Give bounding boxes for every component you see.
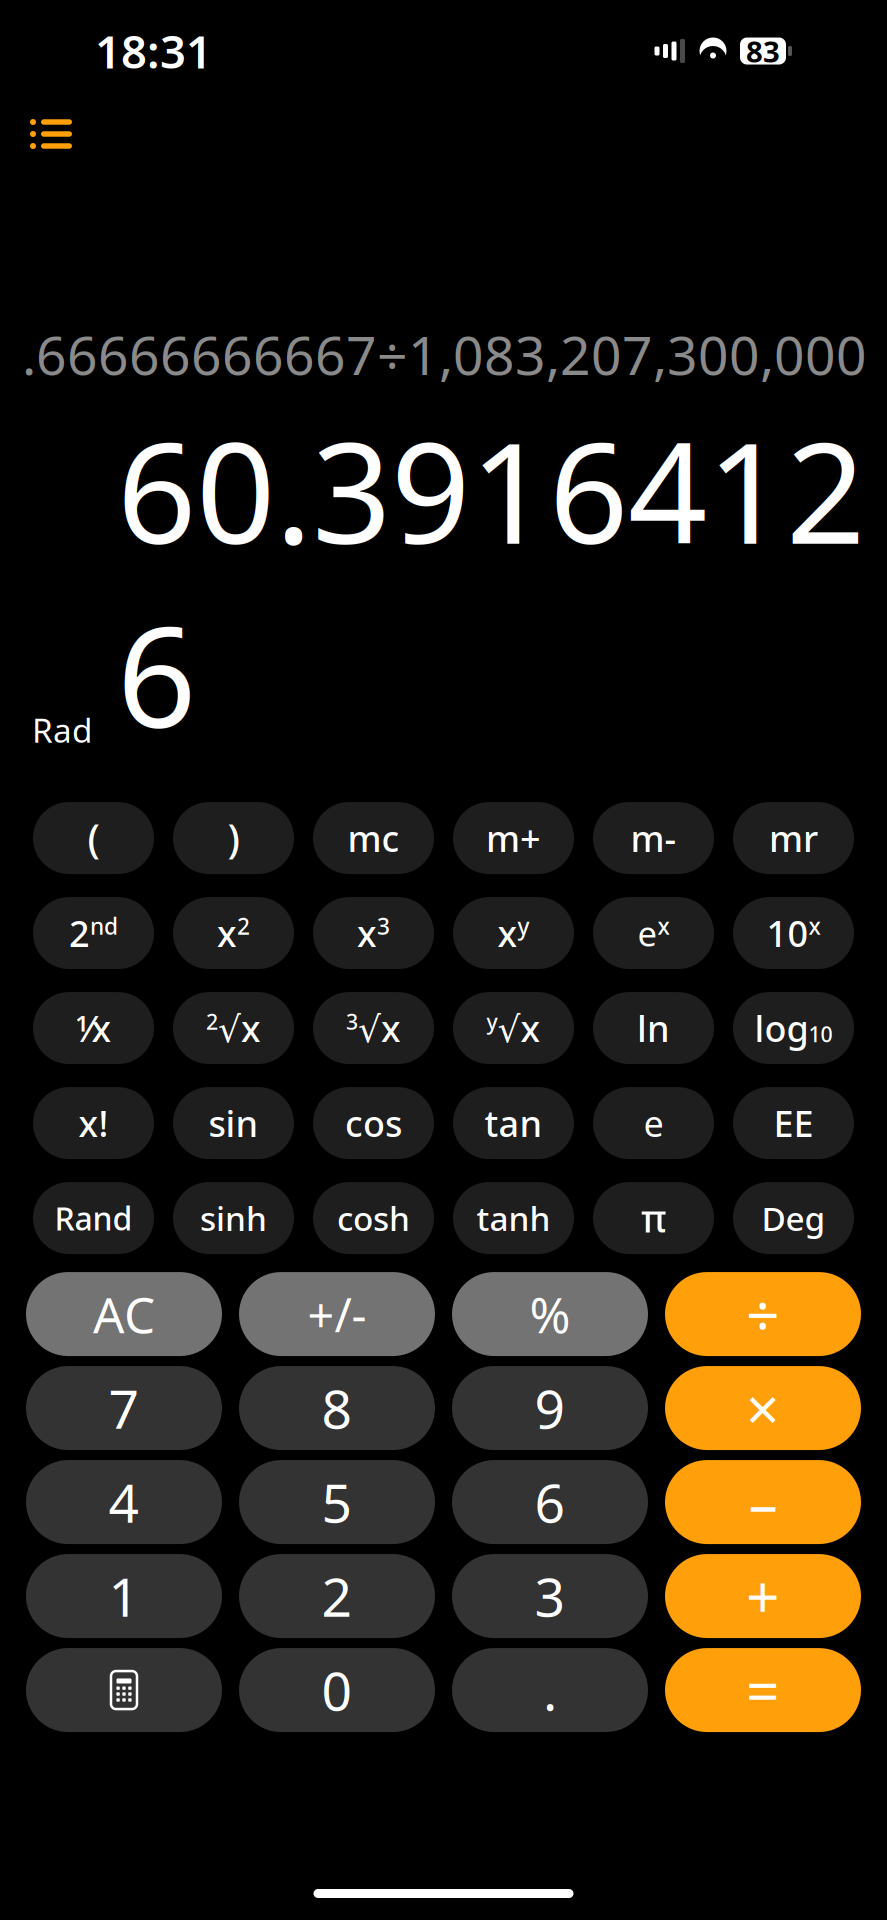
staticText: ⅟x — [75, 1004, 111, 1052]
button[interactable]: tan — [453, 1087, 574, 1159]
button[interactable]: 3 — [313, 992, 434, 1064]
staticText: 83 — [746, 31, 780, 70]
staticText: sinh — [200, 1196, 267, 1240]
button[interactable]: mc — [313, 802, 434, 874]
staticText: cos — [345, 1099, 402, 1147]
staticText: tan — [484, 1099, 542, 1147]
staticText: 5 — [321, 1467, 352, 1537]
staticText: 60.39164126 — [117, 398, 865, 766]
button[interactable]: ) — [173, 802, 294, 874]
button[interactable]: 2 — [33, 897, 154, 969]
button[interactable]: 4 — [26, 1460, 222, 1544]
button[interactable]: mr — [733, 802, 854, 874]
button[interactable]: AC — [26, 1272, 222, 1356]
staticText: x — [217, 909, 237, 957]
button[interactable]: 3 — [452, 1554, 648, 1638]
staticText: EE — [773, 1099, 813, 1147]
staticText: ( — [87, 811, 99, 865]
staticText: 4 — [108, 1467, 139, 1537]
staticText: . — [543, 1655, 557, 1725]
button[interactable]: Basic calculator — [26, 1648, 222, 1732]
staticText: e — [637, 910, 657, 956]
staticText: 8 — [321, 1373, 352, 1443]
staticText: 0 — [321, 1655, 352, 1725]
button[interactable]: Calculation history — [22, 106, 80, 162]
button[interactable]: 6 — [452, 1460, 648, 1544]
button[interactable]: e — [593, 897, 714, 969]
button[interactable]: e — [593, 1087, 714, 1159]
button[interactable]: +/- — [239, 1272, 435, 1356]
staticText: + — [746, 1557, 780, 1635]
button[interactable]: cosh — [313, 1182, 434, 1254]
staticText: Deg — [761, 1196, 825, 1240]
button[interactable]: y — [453, 992, 574, 1064]
staticText: ) — [227, 811, 239, 865]
button[interactable]: tanh — [453, 1182, 574, 1254]
staticText: 18:31 — [95, 21, 212, 81]
button[interactable]: x — [453, 897, 574, 969]
staticText: x! — [78, 1099, 108, 1147]
button[interactable]: Deg — [733, 1182, 854, 1254]
staticText: 2 — [69, 909, 90, 957]
button[interactable]: cos — [313, 1087, 434, 1159]
staticText: 10 — [808, 1020, 832, 1048]
button[interactable]: sin — [173, 1087, 294, 1159]
button[interactable]: – — [665, 1460, 861, 1544]
staticText: – — [748, 1463, 777, 1541]
staticText: x — [497, 909, 517, 957]
button[interactable]: ( — [33, 802, 154, 874]
button[interactable]: x — [173, 897, 294, 969]
button[interactable]: 9 — [452, 1366, 648, 1450]
button[interactable]: 1 — [26, 1554, 222, 1638]
staticText: y — [486, 1007, 497, 1036]
staticText: log — [754, 1004, 808, 1052]
staticText: √x — [218, 1004, 261, 1052]
button[interactable]: x — [313, 897, 434, 969]
staticText: x — [808, 911, 820, 941]
button[interactable]: ÷ — [665, 1272, 861, 1356]
button[interactable]: = — [665, 1648, 861, 1732]
staticText: e — [643, 1099, 663, 1147]
button[interactable]: 0 — [239, 1648, 435, 1732]
staticText: cosh — [337, 1196, 410, 1240]
staticText: √x — [358, 1004, 401, 1052]
staticText: 3 — [377, 911, 390, 941]
button[interactable]: 7 — [26, 1366, 222, 1450]
button[interactable]: % — [452, 1272, 648, 1356]
button[interactable]: . — [452, 1648, 648, 1732]
staticText: 9 — [534, 1373, 565, 1443]
staticText: 3 — [346, 1007, 358, 1036]
button[interactable]: 10 — [733, 897, 854, 969]
button[interactable]: m- — [593, 802, 714, 874]
button[interactable]: log — [733, 992, 854, 1064]
staticText: 10 — [766, 909, 808, 957]
staticText: π — [641, 1193, 666, 1243]
staticText: √x — [497, 1004, 540, 1052]
button[interactable]: ln — [593, 992, 714, 1064]
button[interactable]: EE — [733, 1087, 854, 1159]
staticText: ln — [637, 1004, 670, 1052]
staticText: +/- — [307, 1283, 366, 1345]
staticText: nd — [90, 911, 118, 941]
staticText: x — [357, 909, 377, 957]
button[interactable]: sinh — [173, 1182, 294, 1254]
button[interactable]: m+ — [453, 802, 574, 874]
staticText: .66666666667÷1,083,207,300,000 — [22, 319, 867, 390]
staticText: m+ — [486, 814, 541, 862]
button[interactable]: 8 — [239, 1366, 435, 1450]
staticText: m- — [630, 814, 676, 862]
button[interactable]: 2 — [173, 992, 294, 1064]
staticText: 6 — [534, 1467, 565, 1537]
button[interactable]: ⅟x — [33, 992, 154, 1064]
button[interactable]: × — [665, 1366, 861, 1450]
button[interactable]: π — [593, 1182, 714, 1254]
staticText: 3 — [534, 1561, 565, 1631]
button[interactable]: x! — [33, 1087, 154, 1159]
staticText: AC — [93, 1281, 155, 1347]
button[interactable]: Rand — [33, 1182, 154, 1254]
staticText: ÷ — [746, 1275, 780, 1353]
button[interactable]: + — [665, 1554, 861, 1638]
button[interactable]: 2 — [239, 1554, 435, 1638]
button[interactable]: 5 — [239, 1460, 435, 1544]
staticText: sin — [208, 1099, 258, 1147]
